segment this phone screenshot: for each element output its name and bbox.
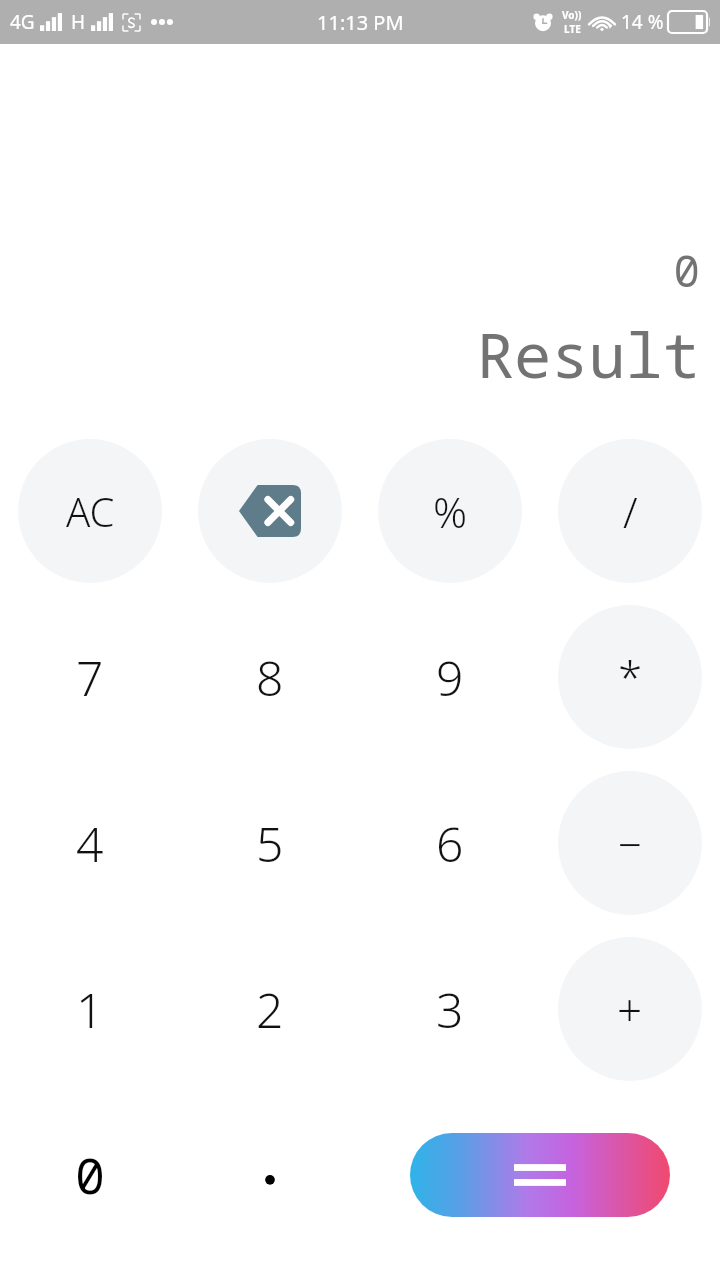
button[interactable]: * xyxy=(558,605,702,749)
staticText: 8 xyxy=(256,645,284,710)
staticText: 9 xyxy=(436,645,464,710)
staticText: % xyxy=(433,483,468,540)
button[interactable]: 2 xyxy=(198,937,342,1081)
button[interactable]: + xyxy=(558,937,702,1081)
button[interactable]: 5 xyxy=(198,771,342,915)
button[interactable]: 9 xyxy=(378,605,522,749)
staticText: 11:13 PM xyxy=(317,9,404,36)
button[interactable]: AC xyxy=(18,439,162,583)
staticText: 14 % xyxy=(621,9,664,35)
staticText: 4G xyxy=(10,9,35,35)
button[interactable]: 6 xyxy=(378,771,522,915)
staticText: − xyxy=(618,815,642,872)
staticText: 0 xyxy=(673,240,700,300)
button[interactable]: Equals xyxy=(410,1133,670,1217)
staticText: 3 xyxy=(436,977,464,1042)
button[interactable]: − xyxy=(558,771,702,915)
button[interactable]: 7 xyxy=(18,605,162,749)
staticText: + xyxy=(617,979,643,1039)
button[interactable]: 4 xyxy=(18,771,162,915)
button[interactable]: % xyxy=(378,439,522,583)
button[interactable] xyxy=(198,1103,342,1247)
staticText: 2 xyxy=(256,977,284,1042)
button[interactable]: 0 xyxy=(18,1103,162,1247)
staticText: / xyxy=(623,483,638,540)
button[interactable]: 1 xyxy=(18,937,162,1081)
staticText: * xyxy=(618,647,643,707)
button[interactable]: 3 xyxy=(378,937,522,1081)
staticText: 0 xyxy=(75,1141,105,1209)
staticText: Result xyxy=(476,312,700,396)
button[interactable]: Backspace xyxy=(198,439,342,583)
staticText: 5 xyxy=(256,811,284,876)
staticText: AC xyxy=(66,484,115,538)
staticText: 7 xyxy=(76,645,104,710)
button[interactable]: 8 xyxy=(198,605,342,749)
staticText: H xyxy=(71,9,86,35)
staticText: 6 xyxy=(436,811,464,876)
staticText: 1 xyxy=(76,977,104,1042)
staticText: Vo)) xyxy=(562,8,582,22)
staticText: LTE xyxy=(564,22,581,36)
button[interactable]: / xyxy=(558,439,702,583)
staticText: 4 xyxy=(76,811,104,876)
